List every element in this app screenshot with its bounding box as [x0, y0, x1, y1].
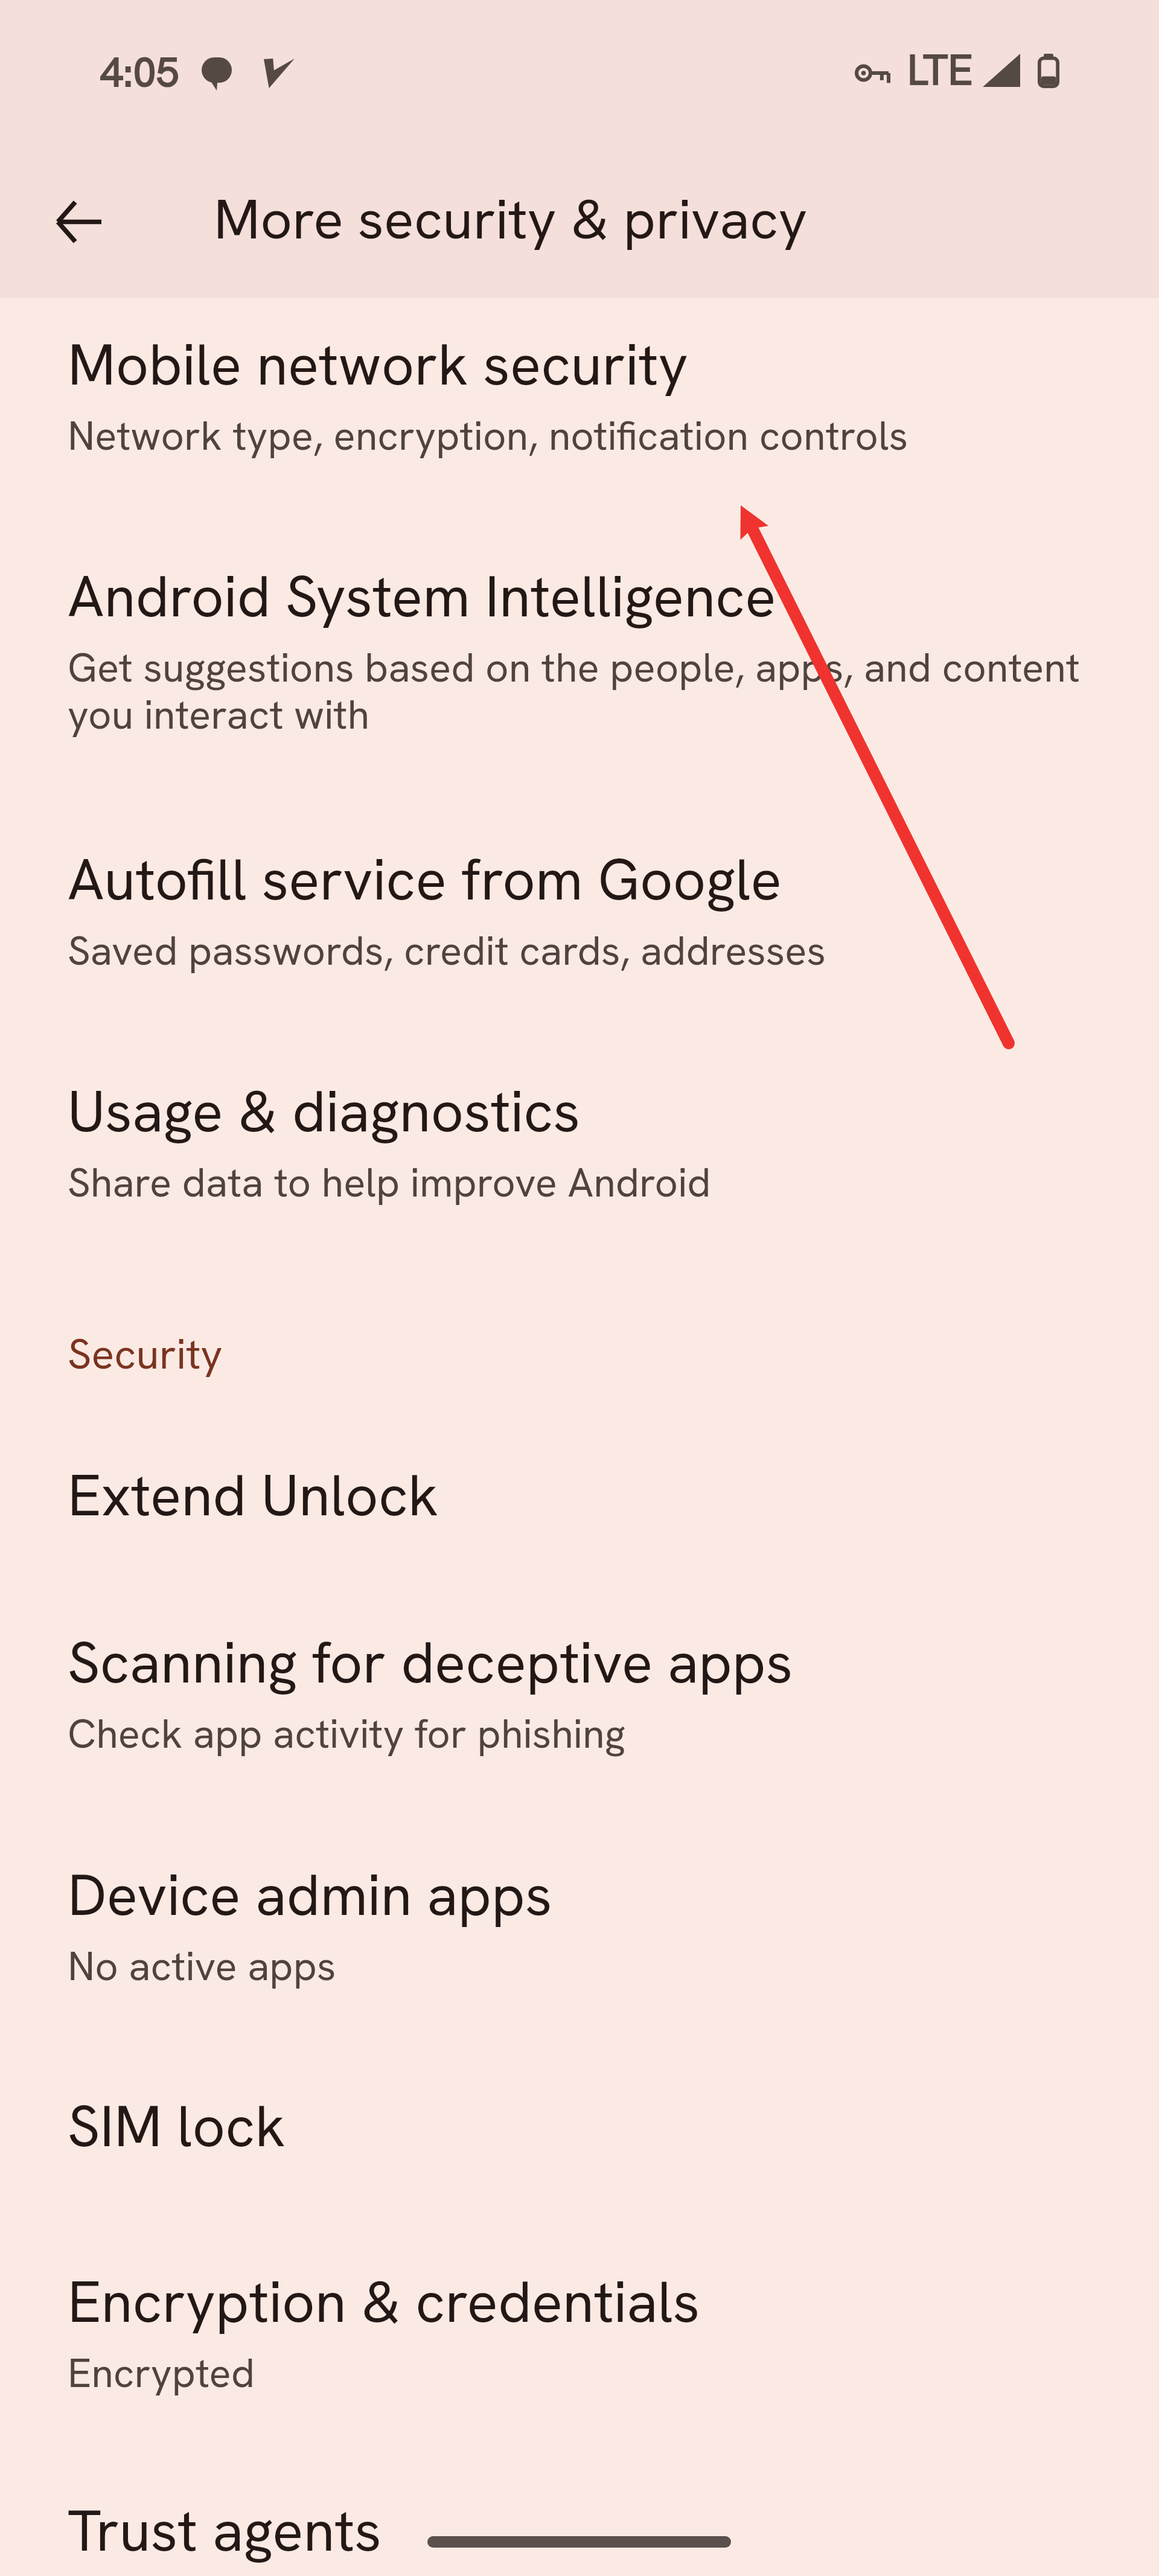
staticText: Android System Intelligence [68, 559, 776, 634]
button[interactable]: SIM lock [0, 1992, 1159, 2164]
button[interactable]: Autofill service from Google [0, 741, 1159, 977]
button[interactable]: Encryption & credentials [0, 2164, 1159, 2399]
button[interactable]: Extend Unlock [0, 1381, 1159, 1533]
button[interactable]: Scanning for deceptive apps [0, 1533, 1159, 1760]
staticText: Device admin apps [68, 1858, 552, 1932]
staticText: Network type, encryption, notification c… [68, 409, 908, 462]
staticText: Saved passwords, credit cards, addresses [68, 924, 826, 977]
button[interactable]: Usage & diagnostics [0, 977, 1159, 1209]
staticText: Encryption & credentials [68, 2264, 700, 2339]
staticText: SIM lock [68, 2089, 286, 2164]
staticText: Check app activity for phishing [68, 1707, 626, 1760]
staticText: Mobile network security [68, 327, 688, 402]
staticText: Scanning for deceptive apps [68, 1625, 793, 1700]
button[interactable]: Mobile network security [0, 298, 1159, 462]
staticText: Extend Unlock [68, 1458, 439, 1533]
staticText: 4:05 [100, 45, 179, 99]
staticText: Autofill service from Google [68, 842, 782, 917]
staticText: LTE [907, 42, 973, 97]
staticText: Encrypted [68, 2347, 255, 2399]
button[interactable]: Android System Intelligence [0, 462, 1159, 741]
staticText: Share data to help improve Android [68, 1156, 711, 1209]
staticText: Usage & diagnostics [68, 1074, 581, 1149]
button[interactable]: Device admin apps [0, 1760, 1159, 1992]
staticText: Get suggestions based on the people, app… [68, 641, 1116, 741]
staticText: No active apps [68, 1940, 336, 1992]
staticText: More security & privacy [214, 183, 808, 255]
button[interactable]: Back [36, 179, 121, 264]
staticText: Trust agents [68, 2493, 382, 2568]
staticText: Security [68, 1326, 223, 1381]
button[interactable]: Trust agents [0, 2399, 1159, 2568]
